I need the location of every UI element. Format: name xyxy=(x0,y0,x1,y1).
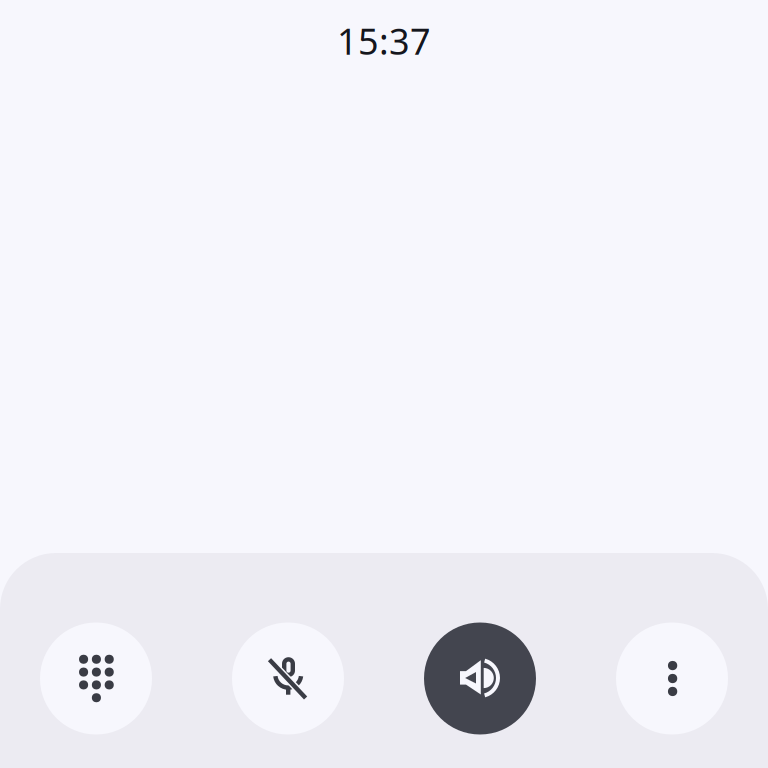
button[interactable]: More options xyxy=(576,622,768,734)
button[interactable]: Speaker xyxy=(384,622,576,734)
staticText: 15:37 xyxy=(337,17,431,65)
button[interactable]: Keypad xyxy=(0,622,192,734)
button[interactable]: Mute xyxy=(192,622,384,734)
